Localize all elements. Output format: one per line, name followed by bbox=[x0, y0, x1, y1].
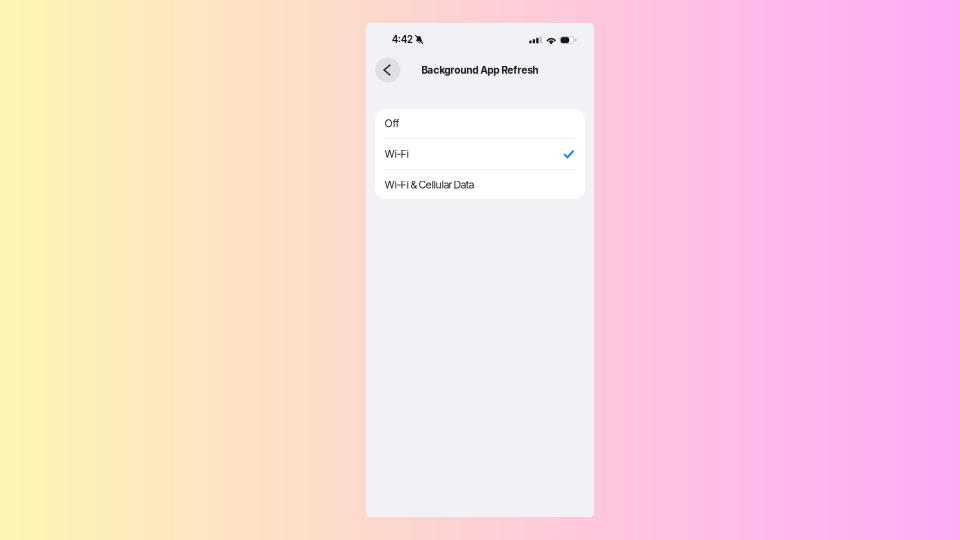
button[interactable]: Wi-Fi bbox=[375, 139, 585, 169]
staticText: Wi-Fi bbox=[385, 148, 409, 160]
staticText: Wi-Fi & Cellular Data bbox=[385, 178, 474, 191]
staticText: 4:42 bbox=[392, 33, 413, 45]
button[interactable]: Back bbox=[374, 56, 402, 84]
button[interactable]: Off bbox=[375, 108, 585, 138]
button[interactable]: Wi-Fi & Cellular Data bbox=[375, 170, 585, 200]
staticText: Background App Refresh bbox=[421, 64, 538, 76]
staticText: Off bbox=[385, 117, 399, 130]
